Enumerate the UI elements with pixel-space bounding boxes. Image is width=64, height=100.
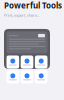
button[interactable]: Tool xyxy=(6,55,19,69)
button[interactable]: Tool xyxy=(21,70,33,83)
button[interactable]: Tool xyxy=(6,70,19,83)
button[interactable]: Tool xyxy=(21,55,33,69)
button[interactable]: Tool xyxy=(35,55,47,69)
staticText: Print, export, share… xyxy=(4,13,40,18)
staticText: Powerful Tools xyxy=(4,0,62,11)
button[interactable]: Tool xyxy=(35,70,47,83)
